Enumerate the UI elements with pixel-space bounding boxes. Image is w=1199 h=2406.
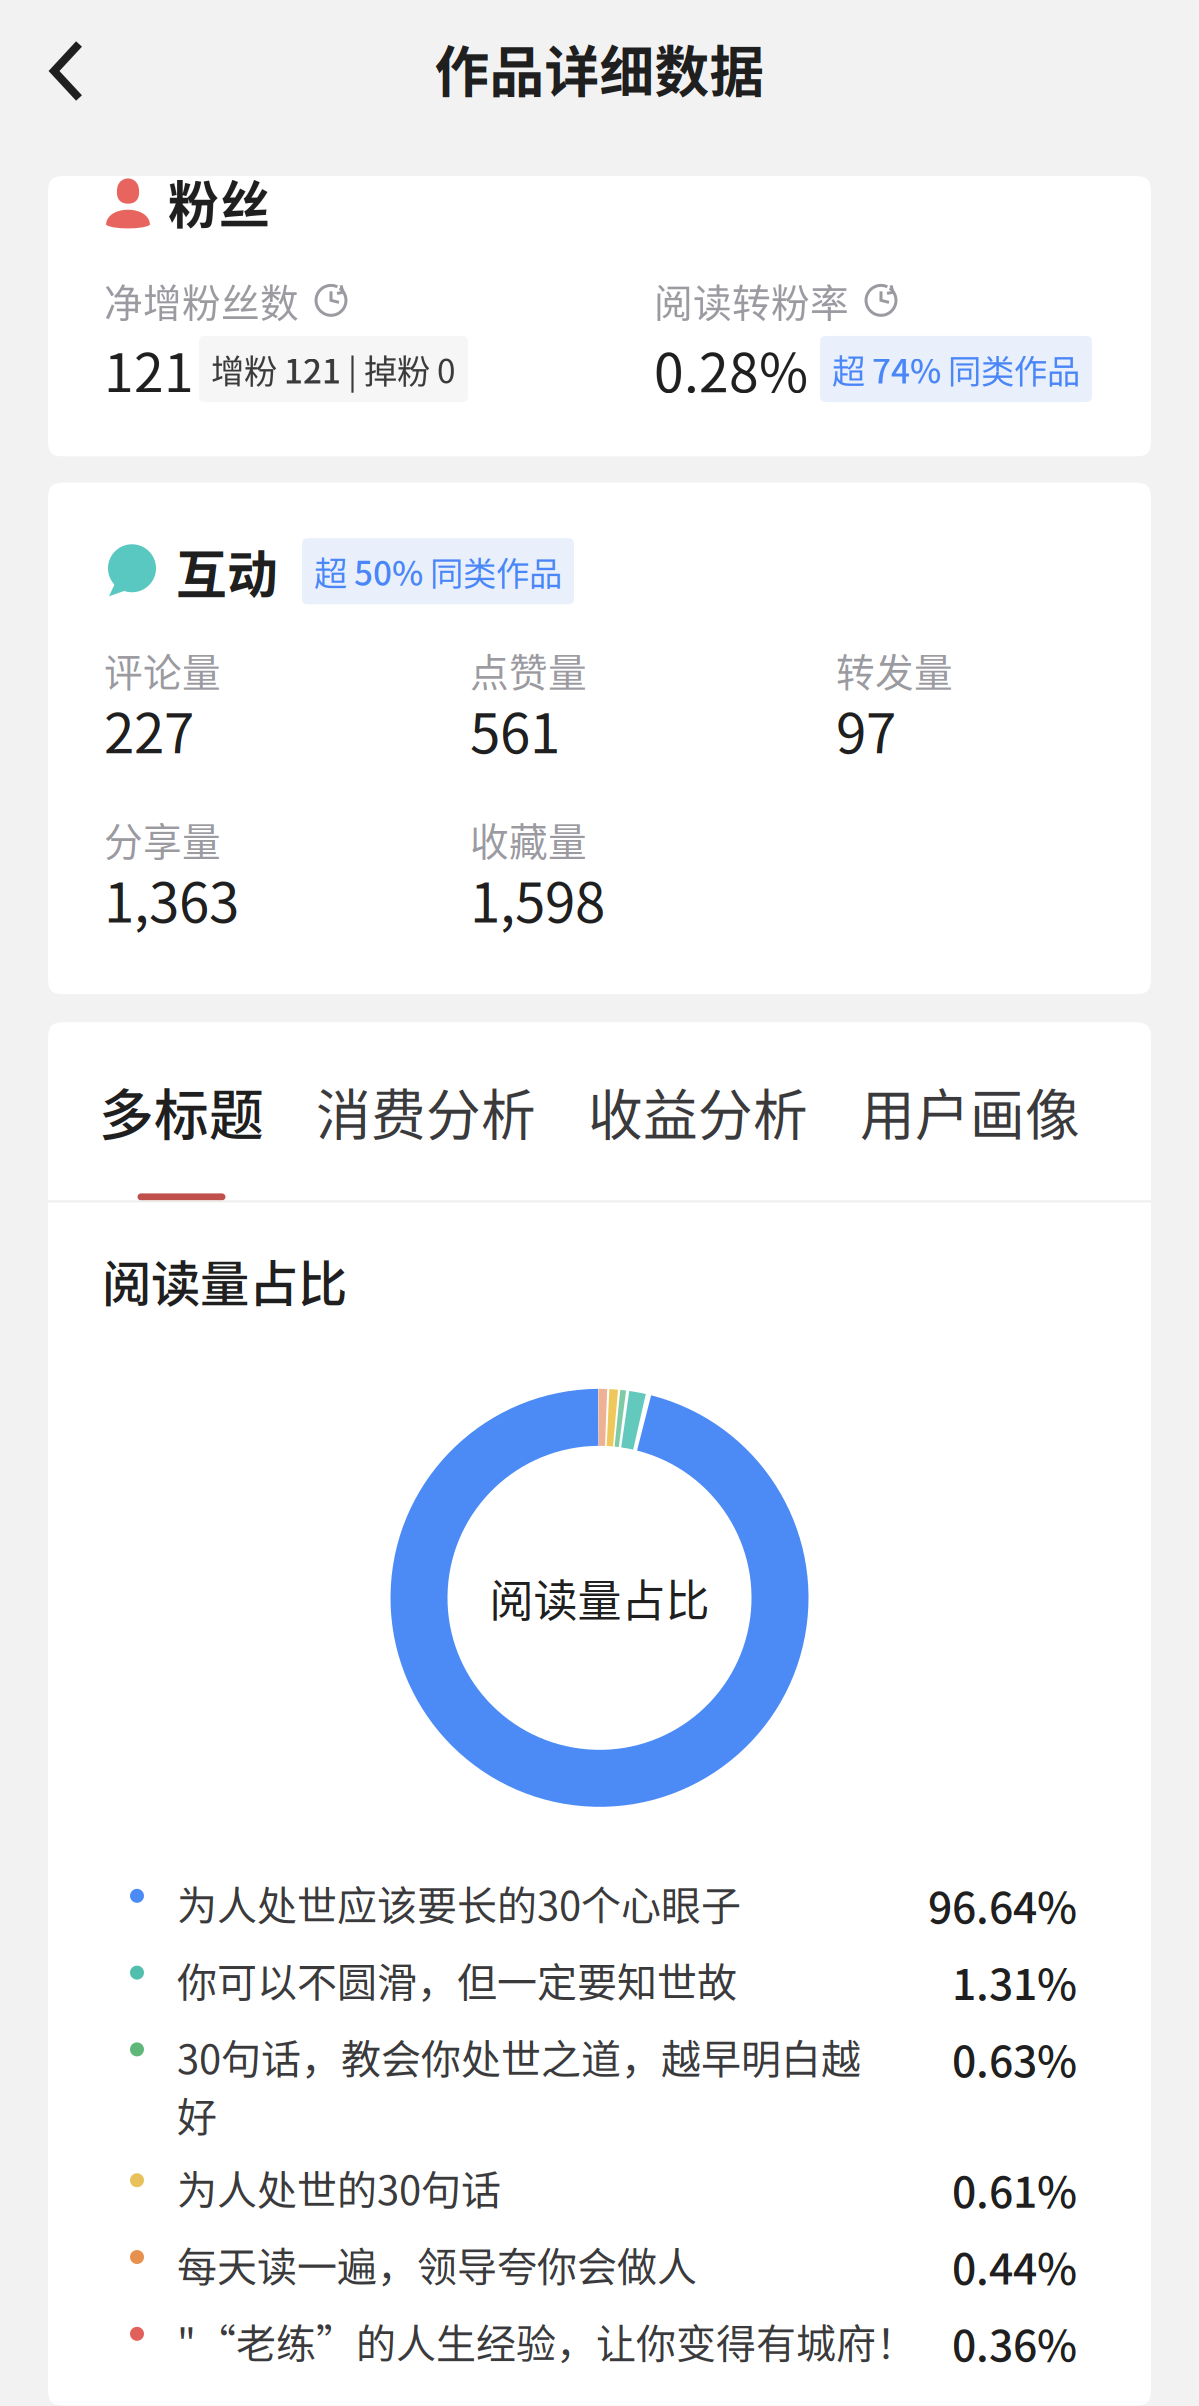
staticText: 561 bbox=[470, 690, 560, 769]
staticText: 0.28% bbox=[654, 330, 808, 408]
staticText: 点赞量 bbox=[470, 642, 587, 698]
button[interactable]: 多标题 bbox=[73, 1071, 290, 1200]
button[interactable]: 收益分析 bbox=[562, 1071, 834, 1200]
staticText: 97 bbox=[836, 690, 896, 769]
staticText: 超 bbox=[832, 345, 872, 393]
staticText: 评论量 bbox=[104, 642, 221, 698]
staticText: 增粉 bbox=[211, 345, 284, 393]
button[interactable]: 返回 bbox=[0, 0, 120, 132]
staticText: 0.36% bbox=[952, 2312, 1077, 2374]
staticText: 227 bbox=[104, 690, 194, 769]
staticText: 1.31% bbox=[952, 1951, 1077, 2012]
staticText: 同类作品 bbox=[941, 345, 1080, 393]
staticText: 0.63% bbox=[952, 2027, 1077, 2089]
staticText: 为人处世的30句话 bbox=[177, 2158, 501, 2216]
staticText: 30句话，教会你处世之道，越早明白越 好 bbox=[177, 2027, 861, 2143]
button[interactable]: 消费分析 bbox=[290, 1071, 562, 1200]
staticText: 消费分析 bbox=[316, 1071, 536, 1150]
staticText: "“老练”的人生经验，让你变得有城府！ bbox=[177, 2312, 916, 2370]
staticText: 转发量 bbox=[836, 642, 953, 698]
staticText: 收藏量 bbox=[470, 811, 587, 867]
staticText: 分享量 bbox=[104, 811, 221, 867]
staticText: 96.64% bbox=[928, 1874, 1077, 1936]
staticText: 1,598 bbox=[470, 859, 605, 938]
staticText: 同类作品 bbox=[423, 547, 562, 595]
staticText: 阅读量占比 bbox=[102, 1244, 347, 1316]
staticText: 粉丝 bbox=[168, 165, 270, 238]
staticText: 121 bbox=[284, 345, 341, 393]
staticText: 121 bbox=[104, 330, 194, 408]
staticText: 为人处世应该要长的30个心眼子 bbox=[177, 1874, 741, 1932]
staticText: 50% bbox=[354, 547, 423, 595]
staticText: 阅读量占比 bbox=[489, 1566, 709, 1630]
staticText: 作品详细数据 bbox=[434, 28, 764, 107]
staticText: 互动 bbox=[176, 535, 278, 608]
staticText: 1,363 bbox=[104, 859, 239, 938]
staticText: 你可以不圆滑，但一定要知世故 bbox=[177, 1951, 737, 2008]
staticText: 74% bbox=[872, 345, 941, 393]
staticText: | 掉粉 0 bbox=[341, 345, 456, 393]
staticText: 每天读一遍，领导夸你会做人 bbox=[177, 2235, 697, 2293]
staticText: 超 bbox=[314, 547, 354, 595]
button[interactable]: 用户画像 bbox=[834, 1071, 1106, 1200]
staticText: 收益分析 bbox=[588, 1071, 808, 1150]
staticText: 用户画像 bbox=[860, 1071, 1080, 1150]
staticText: 多标题 bbox=[99, 1071, 264, 1150]
staticText: 净增粉丝数 bbox=[104, 272, 299, 328]
staticText: 0.44% bbox=[952, 2235, 1077, 2297]
staticText: 阅读转粉率 bbox=[654, 272, 849, 328]
staticText: 0.61% bbox=[952, 2158, 1077, 2220]
